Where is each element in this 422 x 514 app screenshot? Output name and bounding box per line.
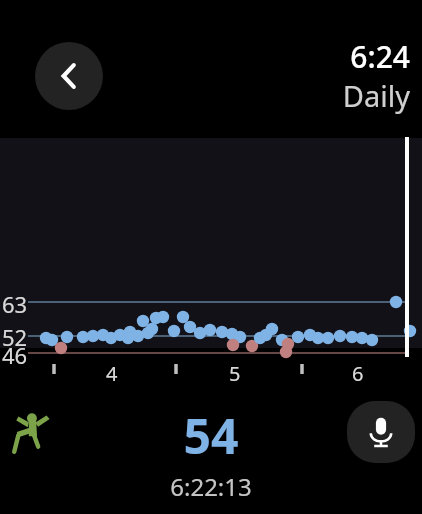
staticText: 4 [106, 360, 118, 387]
staticText: 6:24 [250, 36, 410, 76]
staticText: 63 [2, 289, 28, 319]
button[interactable]: Back [35, 42, 103, 110]
staticText: 54 [131, 403, 291, 459]
staticText: 6:22:13 [131, 470, 291, 504]
staticText: Daily [250, 76, 410, 116]
staticText: 46 [2, 340, 28, 370]
button[interactable]: Activity [8, 405, 60, 457]
staticText: 6 [352, 360, 364, 387]
staticText: 52 [2, 322, 28, 352]
staticText: 5 [229, 360, 241, 387]
button[interactable]: Voice input [347, 401, 415, 463]
